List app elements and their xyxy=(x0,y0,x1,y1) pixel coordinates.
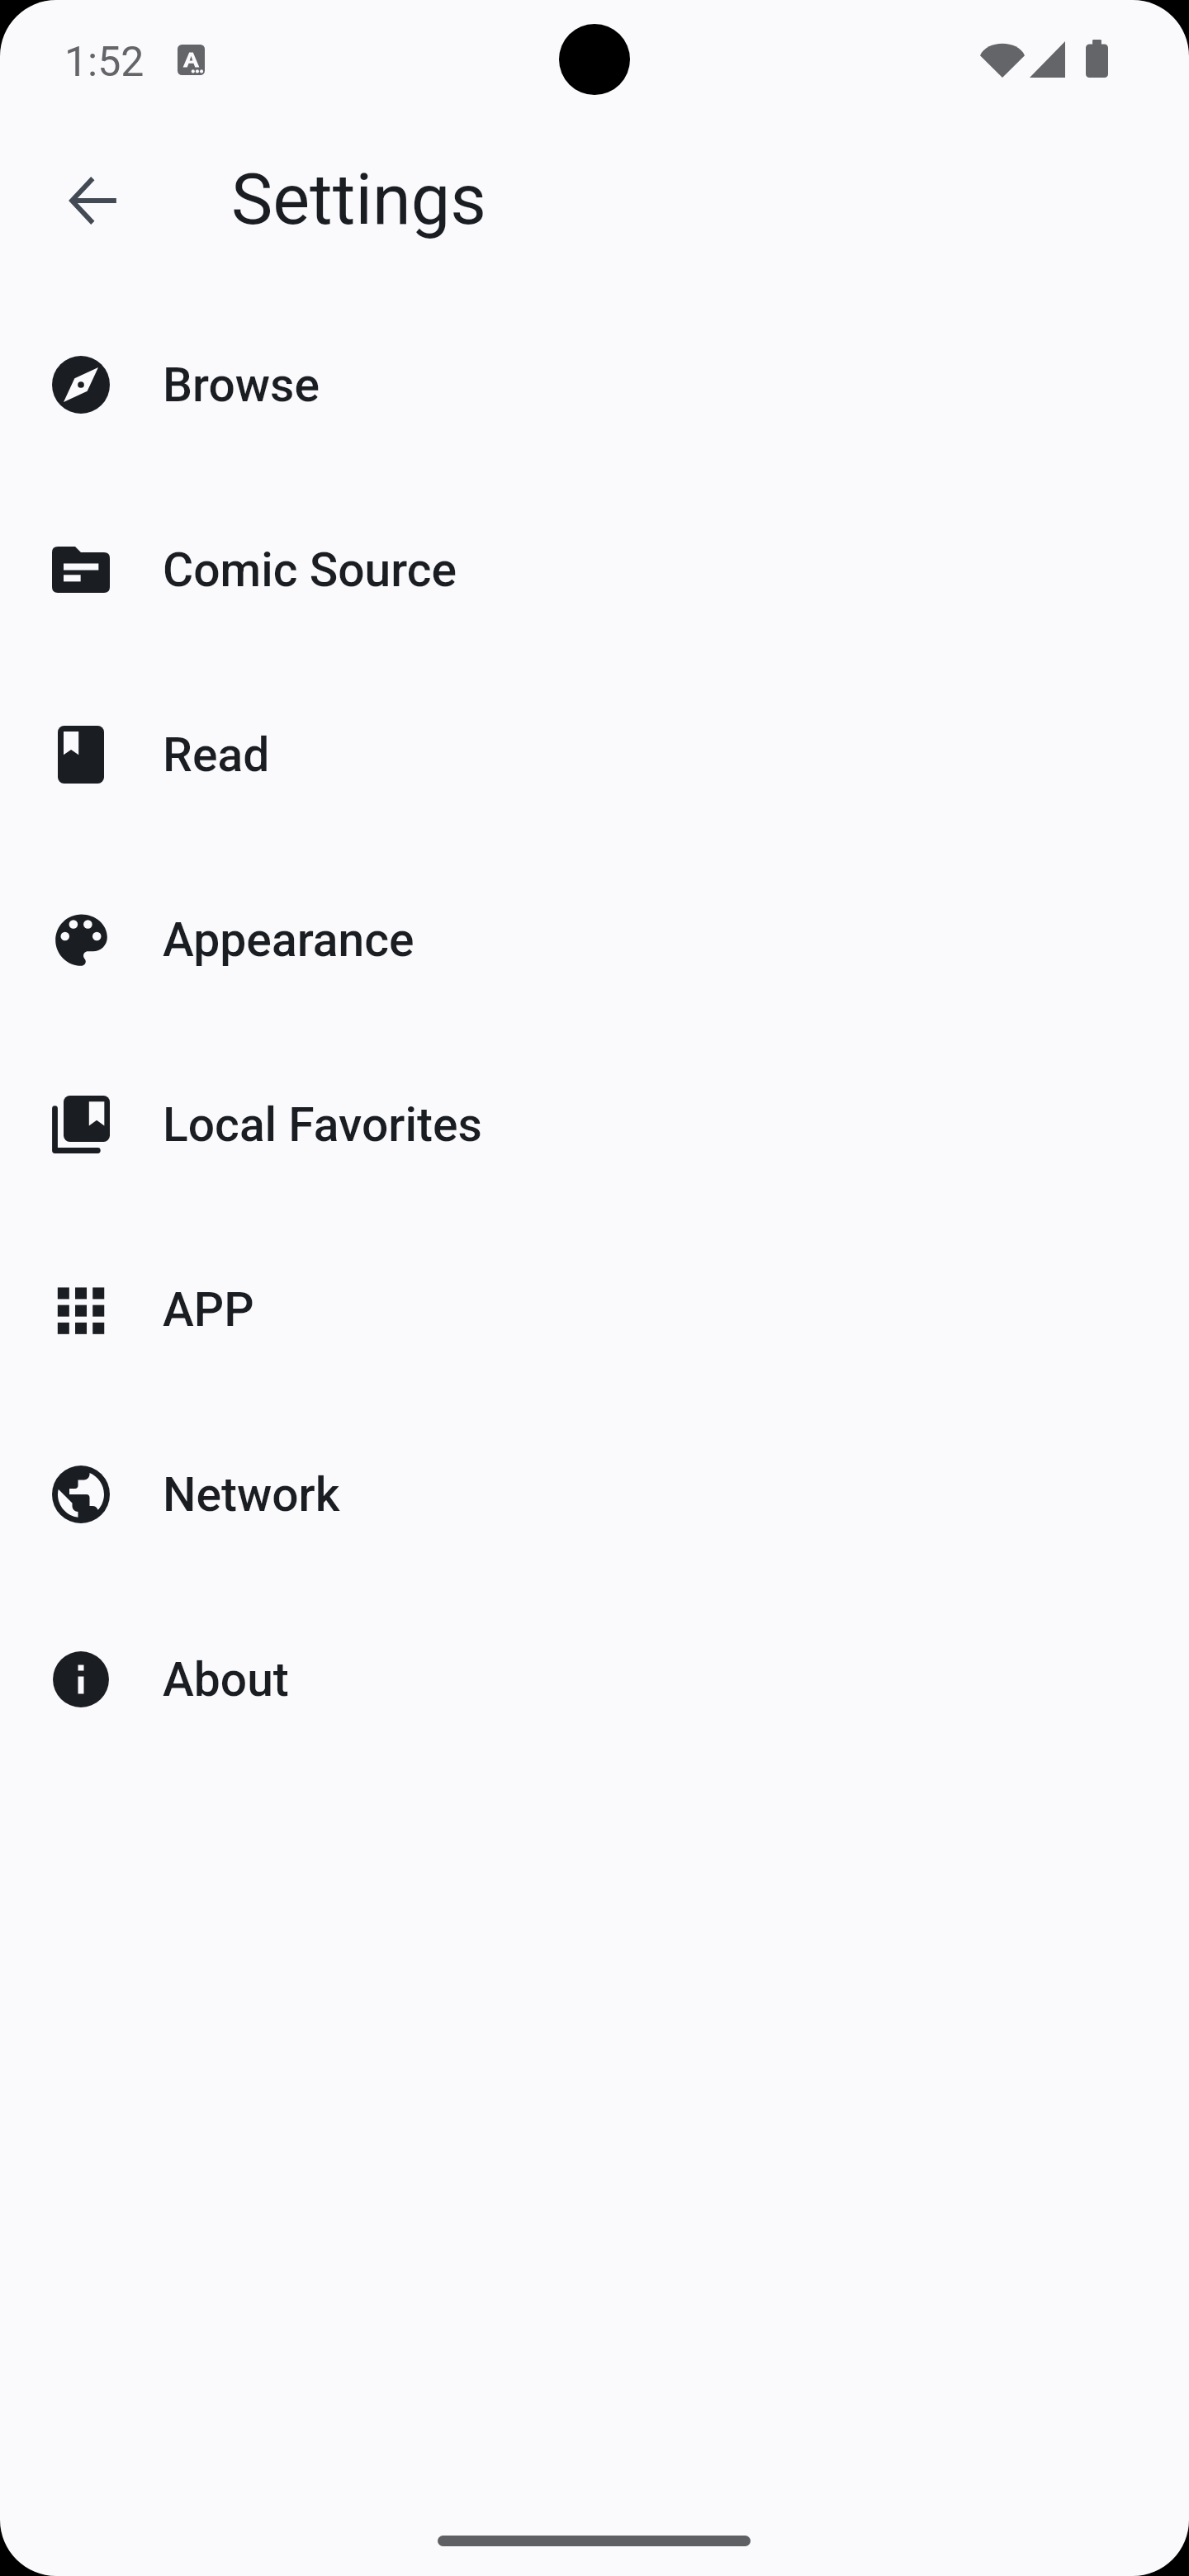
staticText: Appearance xyxy=(163,912,414,968)
button[interactable]: Local Favorites xyxy=(0,1032,1189,1217)
staticText: About xyxy=(163,1652,289,1707)
button[interactable]: Back xyxy=(53,161,132,240)
staticText: Browse xyxy=(163,358,320,413)
staticText: Network xyxy=(163,1467,340,1522)
button[interactable]: About xyxy=(0,1587,1189,1772)
button[interactable]: Comic Source xyxy=(0,477,1189,662)
staticText: Local Favorites xyxy=(163,1097,482,1153)
button[interactable]: Appearance xyxy=(0,847,1189,1032)
staticText: Comic Source xyxy=(163,542,457,598)
button[interactable]: Browse xyxy=(0,292,1189,477)
button[interactable]: Network xyxy=(0,1402,1189,1587)
staticText: 1:52 xyxy=(64,38,144,87)
button[interactable]: APP xyxy=(0,1217,1189,1402)
staticText: Read xyxy=(163,727,270,783)
staticText: Settings xyxy=(231,159,486,241)
staticText: APP xyxy=(163,1282,254,1338)
button[interactable]: Read xyxy=(0,662,1189,847)
